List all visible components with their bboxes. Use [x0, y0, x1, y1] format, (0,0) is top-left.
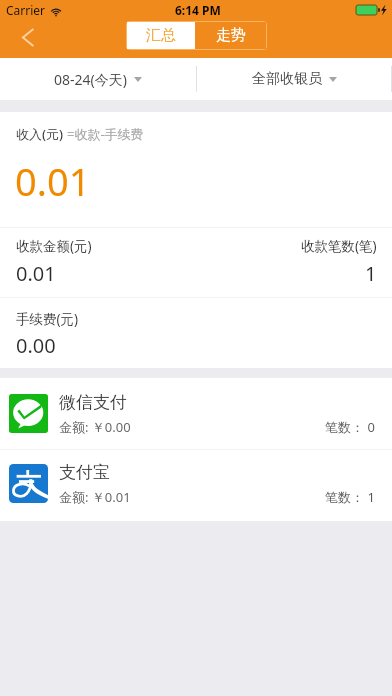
button[interactable]: 微信支付: [0, 378, 392, 449]
staticText: 6:14 PM: [175, 2, 221, 18]
button[interactable]: 全部收银员: [196, 58, 392, 100]
staticText: 0.01: [16, 260, 56, 287]
button[interactable]: 汇总: [127, 22, 195, 49]
button[interactable]: 走势: [195, 22, 266, 49]
staticText: 金额: ￥0.01: [59, 488, 131, 506]
staticText: 0.01: [15, 155, 91, 207]
button[interactable]: 支付宝: [0, 450, 392, 521]
button[interactable]: Back: [0, 20, 46, 58]
staticText: 1: [365, 260, 377, 287]
staticText: 汇总: [146, 26, 176, 45]
staticText: 笔数： 0: [325, 418, 375, 436]
staticText: 收款金额(元): [16, 237, 92, 255]
staticText: 0.00: [16, 332, 56, 359]
staticText: 金额: ￥0.00: [59, 418, 131, 436]
staticText: 微信支付: [59, 392, 127, 413]
staticText: 收入(元): [16, 125, 67, 143]
staticText: 全部收银员: [252, 70, 322, 88]
staticText: 08-24(今天): [54, 70, 127, 89]
staticText: 收款笔数(笔): [301, 237, 377, 255]
staticText: 笔数： 1: [325, 488, 375, 506]
staticText: =收款-手续费: [67, 125, 144, 143]
staticText: 支付宝: [59, 462, 110, 483]
staticText: 手续费(元): [16, 310, 79, 328]
staticText: Carrier: [6, 2, 46, 18]
button[interactable]: 08-24(今天): [0, 58, 196, 100]
staticText: 走势: [216, 26, 246, 45]
